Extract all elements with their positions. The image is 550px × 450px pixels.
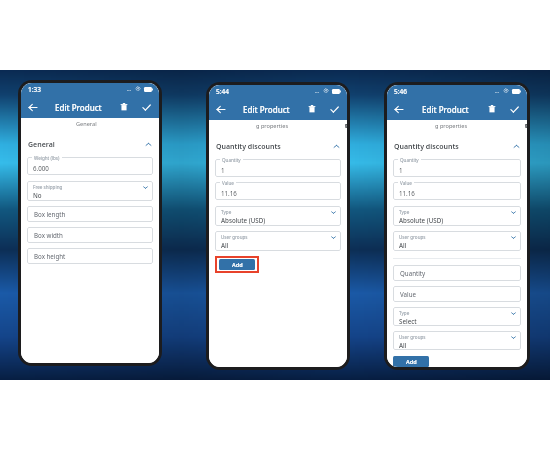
staticText: 5:44: [216, 87, 229, 96]
button[interactable]: Delete: [301, 98, 323, 120]
button[interactable]: Save: [135, 96, 157, 118]
staticText: Quantity discounts: [394, 142, 459, 152]
staticText: Type: [399, 310, 410, 316]
other: Expand: [331, 235, 336, 240]
staticText: Value: [222, 180, 234, 186]
staticText: 1: [221, 166, 225, 174]
staticText: Weight (lbs): [34, 155, 60, 161]
staticText: Type: [221, 209, 232, 215]
staticText: Edit Product: [422, 104, 469, 115]
staticText: ...: [127, 86, 132, 93]
button[interactable]: User groups: [393, 331, 521, 350]
staticText: All: [399, 341, 407, 349]
staticText: Box height: [34, 252, 66, 260]
button[interactable]: Box width: [27, 227, 153, 243]
staticText: General: [28, 140, 55, 150]
staticText: All: [399, 241, 407, 249]
button[interactable]: Type: [215, 206, 341, 226]
button[interactable]: Back: [21, 96, 43, 118]
staticText: Type: [399, 209, 410, 215]
other: Expand: [511, 335, 516, 340]
button[interactable]: Quantity: [215, 159, 341, 177]
button[interactable]: g properties: [387, 120, 521, 135]
staticText: 11.16: [399, 189, 415, 197]
staticText: Box length: [34, 210, 66, 218]
staticText: Add: [232, 261, 243, 268]
staticText: Select: [399, 317, 417, 325]
button[interactable]: Weight (lbs): [27, 157, 153, 175]
staticText: Absolute (USD): [399, 216, 444, 224]
button[interactable]: Type: [393, 307, 521, 326]
staticText: General: [76, 120, 97, 128]
staticText: Value: [400, 180, 412, 186]
button[interactable]: Value: [393, 182, 521, 200]
staticText: 1:33: [28, 85, 41, 94]
button[interactable]: Add: [393, 356, 429, 367]
staticText: Quantity: [400, 269, 426, 277]
button[interactable]: Add: [219, 259, 255, 270]
staticText: Edit Product: [55, 102, 102, 113]
staticText: 1: [399, 166, 403, 174]
other: Expand: [511, 235, 516, 240]
other: Expand: [511, 210, 516, 215]
staticText: Edit Product: [243, 104, 290, 115]
staticText: User groups: [399, 234, 426, 240]
staticText: User groups: [221, 234, 248, 240]
staticText: g properties: [256, 122, 289, 130]
staticText: Free shipping: [33, 184, 63, 190]
button[interactable]: Save: [323, 98, 345, 120]
other: Expand: [511, 311, 516, 316]
button[interactable]: Value: [393, 286, 521, 302]
button[interactable]: User groups: [393, 231, 521, 251]
staticText: Value: [400, 290, 416, 298]
staticText: 5:46: [394, 87, 407, 96]
staticText: 11.16: [221, 189, 237, 197]
button[interactable]: Back: [209, 98, 231, 120]
button[interactable]: Back: [387, 98, 409, 120]
staticText: Add: [406, 358, 417, 365]
button[interactable]: Save: [503, 98, 525, 120]
staticText: Absolute (USD): [221, 216, 266, 224]
button[interactable]: Type: [393, 206, 521, 226]
button[interactable]: Quantity: [393, 159, 521, 177]
staticText: Quantity: [222, 157, 241, 163]
button[interactable]: General: [21, 136, 159, 153]
staticText: ...: [315, 88, 320, 95]
button[interactable]: Quantity: [393, 265, 521, 281]
button[interactable]: Quantity discounts: [209, 138, 347, 155]
staticText: Quantity: [400, 157, 419, 163]
staticText: All: [221, 241, 229, 249]
button[interactable]: g properties: [209, 120, 341, 135]
staticText: 6.000: [33, 164, 49, 172]
staticText: No: [33, 191, 42, 199]
button[interactable]: Delete: [481, 98, 503, 120]
staticText: Box width: [34, 231, 63, 239]
button[interactable]: Value: [215, 182, 341, 200]
other: Expand: [143, 185, 148, 190]
button[interactable]: Delete: [113, 96, 135, 118]
other: Expand: [331, 210, 336, 215]
button[interactable]: Box length: [27, 206, 153, 222]
staticText: User groups: [399, 334, 426, 340]
staticText: g properties: [435, 122, 468, 130]
staticText: Quantity discounts: [216, 142, 281, 152]
button[interactable]: User groups: [215, 231, 341, 251]
button[interactable]: Quantity discounts: [387, 138, 527, 155]
button[interactable]: Free shipping: [27, 181, 153, 201]
button[interactable]: General: [21, 118, 155, 133]
staticText: ...: [495, 88, 500, 95]
button[interactable]: Box height: [27, 248, 153, 264]
